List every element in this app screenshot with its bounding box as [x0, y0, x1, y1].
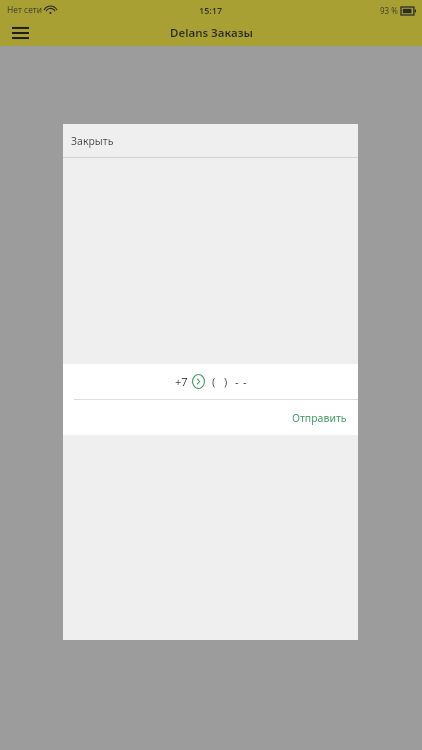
staticText: - [235, 374, 239, 389]
staticText: - [243, 374, 247, 389]
button[interactable]: Select country code [192, 374, 205, 389]
staticText: 15:17 [199, 4, 223, 16]
button[interactable]: +7 [63, 364, 358, 399]
staticText: Delans Заказы [170, 25, 253, 41]
staticText: Нет сети [7, 4, 43, 16]
button[interactable]: Закрыть [63, 124, 358, 157]
button[interactable]: Отправить [63, 400, 358, 435]
staticText: Отправить [292, 411, 347, 425]
staticText: Закрыть [71, 134, 114, 148]
staticText: +7 [175, 374, 188, 389]
staticText: ( [212, 374, 216, 389]
button[interactable]: Open navigation menu [0, 20, 40, 46]
staticText: 93 % [380, 5, 398, 16]
staticText: ) [224, 374, 228, 389]
